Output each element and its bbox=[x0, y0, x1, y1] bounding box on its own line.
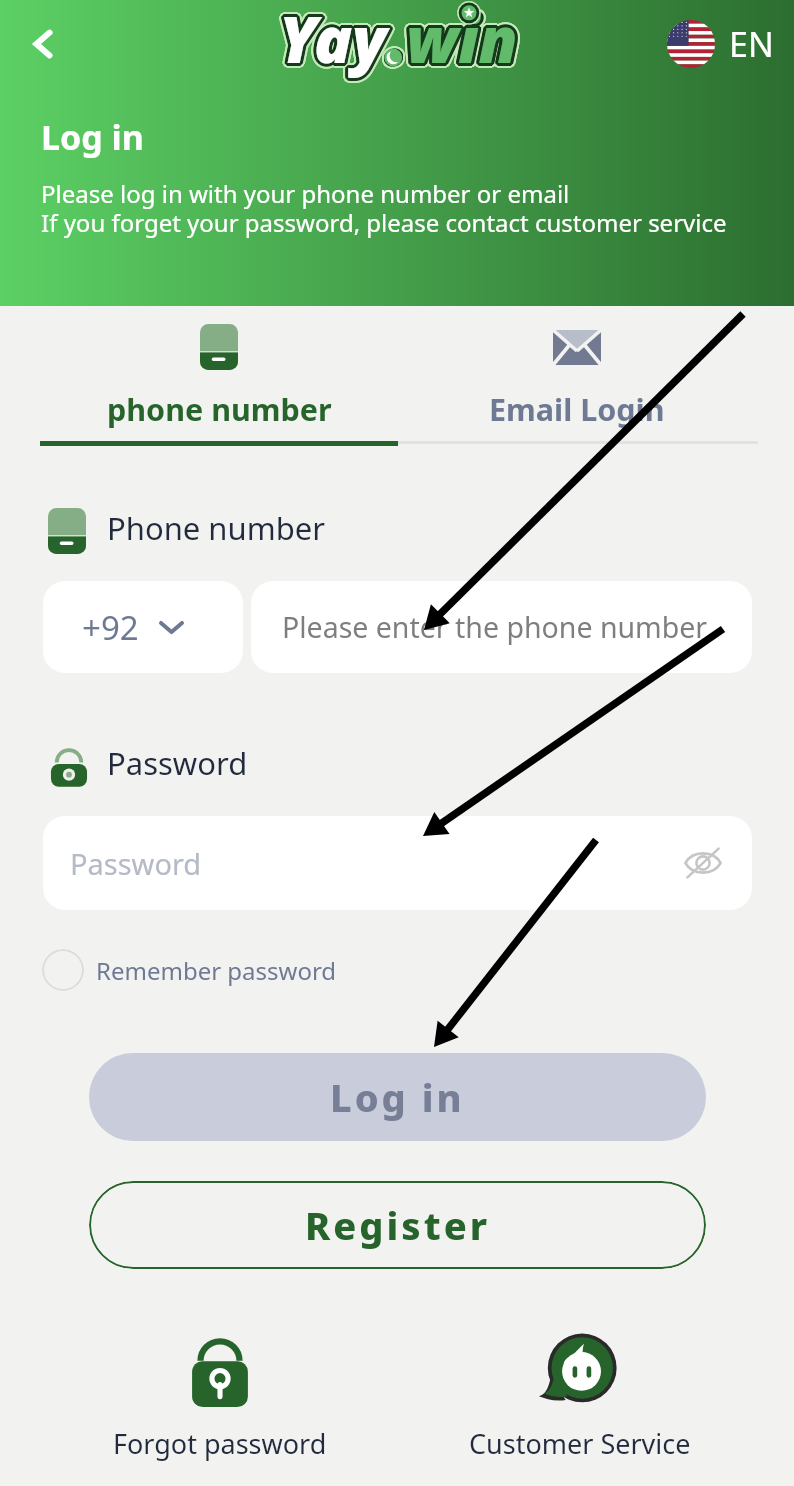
staticText: .win bbox=[385, 0, 516, 86]
staticText: .win bbox=[388, 0, 519, 79]
button[interactable]: Register bbox=[89, 1181, 706, 1269]
staticText: .win bbox=[387, 0, 518, 78]
staticText: .win bbox=[388, 0, 519, 81]
button[interactable]: EN bbox=[667, 20, 774, 68]
staticText: .win bbox=[389, 0, 520, 81]
staticText: Yay bbox=[282, 0, 390, 83]
staticText: .win bbox=[387, 0, 518, 85]
button[interactable]: +92 bbox=[43, 581, 243, 673]
staticText: Yay bbox=[281, 0, 389, 81]
button[interactable]: Forgot password bbox=[100, 1326, 340, 1474]
staticText: Yay bbox=[279, 0, 387, 80]
staticText: Yay bbox=[281, 0, 389, 86]
staticText: .win bbox=[384, 0, 515, 79]
staticText: Yay bbox=[281, 0, 389, 79]
staticText: Yay bbox=[282, 0, 390, 79]
staticText: Yay bbox=[276, 0, 384, 83]
staticText: Yay bbox=[281, 0, 389, 82]
staticText: .win bbox=[383, 0, 514, 84]
staticText: Yay bbox=[281, 0, 389, 81]
button[interactable]: Customer Service bbox=[460, 1326, 700, 1474]
staticText: Yay bbox=[277, 0, 385, 81]
button[interactable]: Log in bbox=[89, 1053, 706, 1141]
staticText: .win bbox=[384, 0, 515, 85]
staticText: .win bbox=[387, 0, 518, 77]
staticText: Yay bbox=[279, 0, 387, 77]
staticText: Yay bbox=[275, 0, 383, 80]
staticText: Yay bbox=[278, 1, 386, 87]
staticText: Yay bbox=[280, 0, 388, 80]
staticText: Yay bbox=[276, 0, 384, 79]
staticText: .win bbox=[386, 0, 517, 81]
staticText: .win bbox=[390, 0, 521, 83]
staticText: Password bbox=[70, 844, 202, 883]
staticText: Yay bbox=[277, 0, 385, 84]
staticText: Yay bbox=[282, 0, 390, 83]
staticText: Yay bbox=[279, 0, 387, 84]
staticText: .win bbox=[386, 0, 517, 82]
staticText: .win bbox=[386, 0, 517, 77]
staticText: .win bbox=[389, 0, 520, 84]
staticText: .win bbox=[387, 0, 518, 86]
staticText: If you forget your password, please cont… bbox=[41, 206, 727, 239]
staticText: Yay bbox=[281, 0, 389, 83]
staticText: Yay bbox=[277, 0, 385, 83]
staticText: Log in bbox=[41, 114, 144, 160]
staticText: .win bbox=[389, 0, 520, 80]
staticText: .win bbox=[386, 0, 517, 86]
staticText: Yay bbox=[281, 0, 389, 85]
staticText: .win bbox=[391, 0, 522, 81]
staticText: .win bbox=[389, 0, 520, 83]
staticText: .win bbox=[386, 0, 517, 80]
staticText: .win bbox=[389, 0, 520, 85]
staticText: .win bbox=[387, 0, 518, 84]
staticText: Yay bbox=[279, 0, 387, 85]
staticText: Yay bbox=[280, 0, 388, 86]
staticText: .win bbox=[389, 0, 520, 82]
staticText: Yay bbox=[276, 0, 384, 82]
staticText: .win bbox=[390, 0, 521, 82]
button[interactable]: Please enter the phone number bbox=[251, 581, 752, 673]
staticText: Yay bbox=[280, 0, 388, 82]
staticText: .win bbox=[392, 0, 523, 82]
staticText: .win bbox=[387, 1, 518, 87]
staticText: Yay bbox=[280, 0, 388, 81]
staticText: .win bbox=[384, 0, 515, 78]
staticText: .win bbox=[388, 0, 519, 83]
staticText: Yay bbox=[281, 0, 389, 78]
staticText: Yay bbox=[276, 0, 384, 82]
staticText: .win bbox=[391, 0, 522, 83]
staticText: Yay bbox=[279, 0, 387, 80]
staticText: Yay bbox=[275, 0, 383, 81]
staticText: Yay bbox=[278, 0, 386, 79]
staticText: .win bbox=[389, 0, 520, 80]
staticText: .win bbox=[387, 0, 518, 81]
staticText: .win bbox=[388, 0, 519, 80]
button[interactable]: Show password bbox=[679, 839, 727, 887]
button[interactable]: phone number bbox=[40, 310, 398, 446]
staticText: Yay bbox=[280, 0, 388, 82]
staticText: Yay bbox=[279, 0, 387, 79]
staticText: Yay bbox=[280, 0, 388, 78]
staticText: .win bbox=[390, 0, 521, 82]
button[interactable]: Remember password bbox=[42, 949, 337, 991]
button[interactable]: Email Login bbox=[398, 310, 756, 446]
staticText: Yay bbox=[281, 0, 389, 84]
staticText: .win bbox=[389, 0, 520, 84]
staticText: .win bbox=[386, 0, 517, 85]
staticText: Yay bbox=[280, 1, 388, 87]
staticText: .win bbox=[392, 0, 523, 83]
button[interactable]: Password bbox=[43, 816, 752, 910]
staticText: .win bbox=[388, 0, 519, 78]
staticText: .win bbox=[384, 0, 515, 83]
staticText: Yay bbox=[278, 0, 386, 83]
staticText: .win bbox=[388, 0, 519, 85]
staticText: Yay bbox=[282, 0, 390, 84]
staticText: Yay bbox=[280, 0, 388, 83]
staticText: .win bbox=[383, 0, 514, 82]
staticText: Yay bbox=[283, 0, 391, 80]
button[interactable]: Back bbox=[14, 15, 72, 73]
staticText: Yay bbox=[277, 0, 385, 85]
staticText: Yay bbox=[282, 0, 390, 85]
staticText: Yay bbox=[276, 0, 384, 78]
